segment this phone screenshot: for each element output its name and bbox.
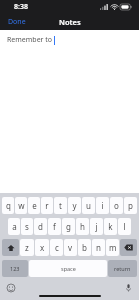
button[interactable]: e (28, 197, 40, 214)
staticText: n (96, 242, 101, 253)
staticText: y (72, 200, 77, 211)
staticText: j (95, 221, 98, 232)
staticText: k (108, 221, 113, 232)
staticText: space (61, 265, 76, 272)
button[interactable]: Backspace (120, 239, 137, 256)
staticText: i (101, 200, 104, 211)
button[interactable]: 123 (2, 260, 28, 277)
staticText: 123 (10, 265, 20, 272)
staticText: w (18, 200, 25, 211)
button[interactable]: k (104, 218, 117, 235)
staticText: e (32, 200, 37, 211)
staticText: g (66, 221, 71, 232)
button[interactable]: Emoji (4, 281, 18, 295)
staticText: q (6, 200, 11, 211)
button[interactable]: c (50, 239, 63, 256)
button[interactable]: Done (0, 15, 34, 29)
button[interactable]: f (48, 218, 61, 235)
button[interactable]: x (35, 239, 49, 256)
staticText: r (45, 200, 49, 211)
staticText: m (109, 242, 117, 253)
button[interactable]: m (106, 239, 119, 256)
staticText: b (82, 242, 87, 253)
staticText: z (25, 242, 29, 253)
staticText: f (53, 221, 56, 232)
button[interactable]: return (108, 260, 137, 277)
button[interactable]: d (34, 218, 47, 235)
button[interactable]: Remember to (0, 30, 139, 193)
staticText: c (55, 242, 59, 253)
button[interactable]: s (21, 218, 33, 235)
button[interactable]: i (96, 197, 109, 214)
staticText: return (114, 265, 131, 272)
button[interactable]: r (41, 197, 53, 214)
staticText: p (128, 200, 133, 211)
button[interactable]: space (29, 260, 107, 277)
button[interactable]: q (2, 197, 14, 214)
button[interactable]: u (82, 197, 95, 214)
staticText: Remember to (7, 35, 53, 45)
staticText: d (38, 221, 43, 232)
button[interactable]: g (62, 218, 75, 235)
button[interactable]: j (90, 218, 103, 235)
button[interactable]: t (54, 197, 67, 214)
staticText: o (114, 200, 119, 211)
staticText: s (25, 221, 29, 232)
staticText: Notes (59, 17, 81, 27)
staticText: x (40, 242, 45, 253)
staticText: h (80, 221, 85, 232)
button[interactable]: Shift (2, 239, 19, 256)
button[interactable]: z (20, 239, 34, 256)
staticText: u (86, 200, 91, 211)
staticText: t (59, 200, 62, 211)
button[interactable]: y (68, 197, 81, 214)
button[interactable]: l (118, 218, 131, 235)
button[interactable]: a (8, 218, 20, 235)
button[interactable]: p (124, 197, 137, 214)
staticText: l (123, 221, 126, 232)
button[interactable]: h (76, 218, 89, 235)
button[interactable]: o (110, 197, 123, 214)
button[interactable]: n (92, 239, 105, 256)
button[interactable]: v (64, 239, 77, 256)
staticText: Done (8, 17, 26, 27)
staticText: 8:38 (14, 2, 28, 12)
staticText: v (68, 242, 73, 253)
staticText: a (12, 221, 17, 232)
button[interactable]: w (15, 197, 27, 214)
button[interactable]: Dictation (121, 281, 135, 295)
button[interactable]: b (78, 239, 91, 256)
